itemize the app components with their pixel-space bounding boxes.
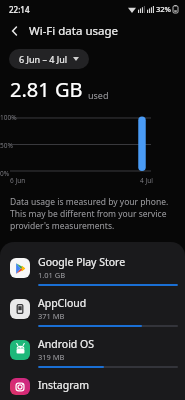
button[interactable]: 6 Jun – 4 Jul bbox=[9, 49, 89, 69]
staticText: 1.01 GB bbox=[38, 270, 66, 280]
staticText: Wi-Fi data usage bbox=[29, 23, 119, 39]
staticText: 6 Jun – 4 Jul bbox=[19, 53, 68, 65]
button[interactable]: Google Play Store bbox=[0, 250, 185, 291]
staticText: 6 Jun bbox=[10, 176, 26, 185]
staticText: used bbox=[88, 89, 109, 101]
button[interactable]: Instagram bbox=[0, 373, 185, 400]
staticText: Instagram bbox=[38, 378, 90, 392]
staticText: 50% bbox=[0, 141, 13, 150]
button[interactable]: AppCloud bbox=[0, 291, 185, 332]
button[interactable]: Back bbox=[4, 20, 26, 42]
staticText: 2.81 GB bbox=[10, 76, 83, 103]
staticText: Google Play Store bbox=[38, 255, 126, 269]
staticText: 100% bbox=[0, 113, 17, 122]
staticText: 32% bbox=[156, 4, 171, 14]
staticText: 22:14 bbox=[9, 4, 30, 15]
staticText: Data usage is measured by your phone. Th… bbox=[10, 196, 173, 232]
button[interactable]: Android OS bbox=[0, 332, 185, 373]
staticText: Android OS bbox=[38, 337, 94, 351]
staticText: AppCloud bbox=[38, 296, 87, 310]
staticText: 4 Jul bbox=[140, 176, 153, 185]
staticText: 371 MB bbox=[38, 311, 65, 321]
staticText: 319 MB bbox=[38, 352, 65, 362]
staticText: 0% bbox=[0, 169, 10, 178]
